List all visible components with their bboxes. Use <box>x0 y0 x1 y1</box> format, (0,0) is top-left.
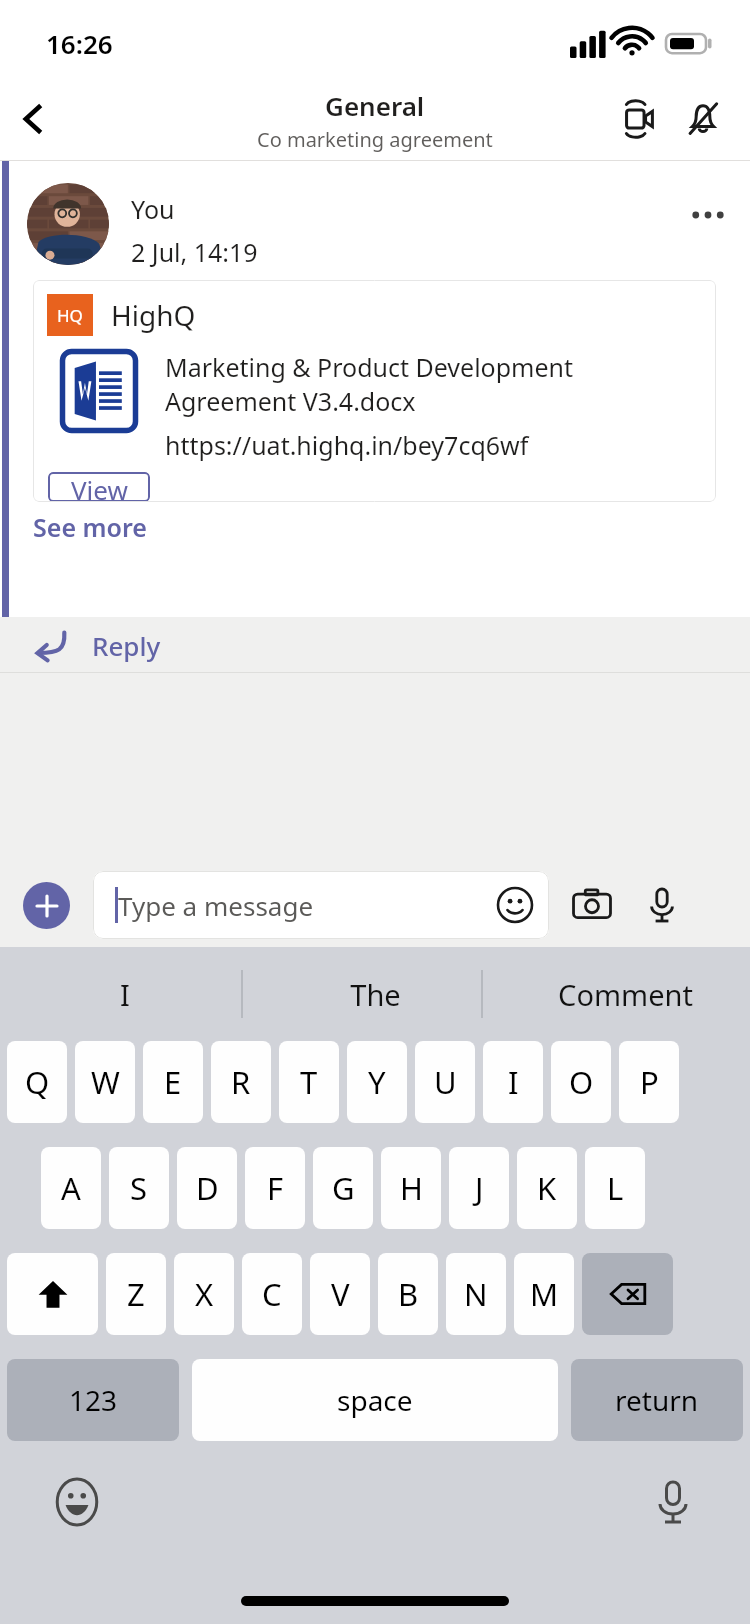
staticText: 123 <box>69 1381 118 1419</box>
button[interactable]: O <box>551 1041 611 1123</box>
staticText: A <box>61 1167 81 1209</box>
button[interactable]: I <box>483 1041 543 1123</box>
staticText: 2 Jul, 14:19 <box>131 235 258 269</box>
button[interactable]: G <box>313 1147 373 1229</box>
staticText: V <box>331 1273 350 1315</box>
staticText: F <box>267 1167 284 1209</box>
button[interactable]: I <box>0 947 250 1041</box>
button[interactable]: C <box>242 1253 302 1335</box>
button[interactable]: Emoji keyboard <box>48 1473 106 1531</box>
button[interactable]: Type a message <box>93 871 549 939</box>
button[interactable]: H <box>381 1147 441 1229</box>
staticText: See more <box>33 510 147 544</box>
staticText: U <box>434 1061 457 1103</box>
staticText: H <box>400 1167 423 1209</box>
button[interactable]: W <box>75 1041 135 1123</box>
button[interactable]: V <box>310 1253 370 1335</box>
button[interactable]: See more <box>33 510 147 544</box>
button[interactable]: The <box>250 947 500 1041</box>
staticText: C <box>262 1273 282 1315</box>
button[interactable]: Mute notifications <box>672 88 734 150</box>
staticText: 16:26 <box>46 26 113 61</box>
staticText: HQ <box>57 304 83 327</box>
button[interactable]: Comment <box>500 947 750 1041</box>
button[interactable]: A <box>41 1147 101 1229</box>
button[interactable]: Back <box>0 86 66 152</box>
staticText: B <box>398 1273 419 1315</box>
staticText: The <box>350 975 401 1014</box>
staticText: S <box>130 1167 148 1209</box>
button[interactable]: S <box>109 1147 169 1229</box>
staticText: W <box>91 1061 120 1103</box>
button[interactable]: D <box>177 1147 237 1229</box>
staticText: https://uat.highq.in/bey7cq6wf <box>165 428 529 462</box>
staticText: D <box>196 1167 219 1209</box>
button[interactable]: L <box>585 1147 645 1229</box>
button[interactable]: T <box>279 1041 339 1123</box>
button[interactable]: P <box>619 1041 679 1123</box>
staticText: P <box>640 1061 659 1103</box>
button[interactable]: Voice message <box>633 876 691 934</box>
button[interactable]: E <box>143 1041 203 1123</box>
button[interactable]: Y <box>347 1041 407 1123</box>
button[interactable]: Add attachment <box>23 882 70 929</box>
button[interactable]: Backspace <box>582 1253 673 1335</box>
button[interactable]: 123 <box>7 1359 179 1441</box>
staticText: N <box>464 1273 488 1315</box>
staticText: O <box>569 1061 594 1103</box>
button[interactable]: Z <box>106 1253 166 1335</box>
button[interactable]: HQ <box>33 280 716 502</box>
button[interactable]: R <box>211 1041 271 1123</box>
staticText: Reply <box>92 628 161 663</box>
button[interactable]: Reply <box>0 623 185 667</box>
button[interactable]: K <box>517 1147 577 1229</box>
staticText: Y <box>368 1061 386 1103</box>
staticText: Type a message <box>118 888 314 923</box>
staticText: I <box>120 975 130 1014</box>
staticText: Z <box>127 1273 145 1315</box>
staticText: M <box>530 1273 559 1315</box>
staticText: Co marketing agreement <box>257 126 493 153</box>
button[interactable]: Dictation <box>644 1473 702 1531</box>
staticText: space <box>337 1381 413 1419</box>
staticText: View <box>71 472 128 502</box>
button[interactable]: space <box>192 1359 558 1441</box>
button[interactable]: Camera <box>563 876 621 934</box>
button[interactable]: View <box>48 472 150 502</box>
staticText: L <box>607 1167 624 1209</box>
staticText: X <box>195 1273 214 1315</box>
staticText: return <box>615 1381 699 1419</box>
staticText: Agreement V3.4.docx <box>165 384 416 418</box>
button[interactable]: U <box>415 1041 475 1123</box>
staticText: I <box>508 1061 519 1103</box>
button[interactable]: Emoji <box>489 879 541 931</box>
button[interactable]: Video call <box>610 88 672 150</box>
button[interactable]: Q <box>7 1041 67 1123</box>
staticText: You <box>131 192 175 226</box>
staticText: Comment <box>558 975 693 1014</box>
button[interactable]: M <box>514 1253 574 1335</box>
staticText: E <box>164 1061 182 1103</box>
staticText: K <box>537 1167 557 1209</box>
button[interactable]: J <box>449 1147 509 1229</box>
button[interactable]: More options <box>676 183 740 247</box>
button[interactable]: N <box>446 1253 506 1335</box>
staticText: HighQ <box>111 296 196 334</box>
staticText: J <box>475 1167 484 1209</box>
button[interactable]: Shift <box>7 1253 98 1335</box>
staticText: Q <box>25 1061 50 1103</box>
button[interactable]: return <box>571 1359 743 1441</box>
staticText: G <box>332 1167 355 1209</box>
staticText: T <box>300 1061 318 1103</box>
staticText: R <box>231 1061 251 1103</box>
button[interactable]: X <box>174 1253 234 1335</box>
button[interactable]: F <box>245 1147 305 1229</box>
staticText: General <box>325 88 425 123</box>
button[interactable]: B <box>378 1253 438 1335</box>
staticText: Marketing & Product Development <box>165 350 574 384</box>
